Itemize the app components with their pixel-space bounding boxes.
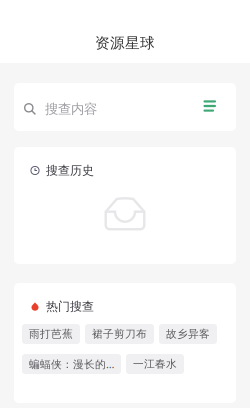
button[interactable]: Menu xyxy=(203,100,216,118)
button[interactable]: 裙子剪刀布 xyxy=(85,324,154,344)
button[interactable]: 雨打芭蕉 xyxy=(22,324,80,344)
staticText: 一江春水 xyxy=(133,357,177,370)
button[interactable]: 蝙蝠侠：漫长的… xyxy=(22,354,121,374)
button[interactable]: 一江春水 xyxy=(126,354,184,374)
staticText: 热门搜查 xyxy=(46,299,94,314)
staticText: 搜查内容 xyxy=(45,101,97,117)
staticText: 搜查历史 xyxy=(46,163,94,178)
staticText: 裙子剪刀布 xyxy=(92,327,147,340)
button[interactable]: 故乡异客 xyxy=(159,324,217,344)
staticText: 雨打芭蕉 xyxy=(29,327,73,340)
staticText: 故乡异客 xyxy=(166,327,210,340)
staticText: 蝙蝠侠：漫长的… xyxy=(29,357,114,371)
staticText: 资源星球 xyxy=(95,34,155,52)
